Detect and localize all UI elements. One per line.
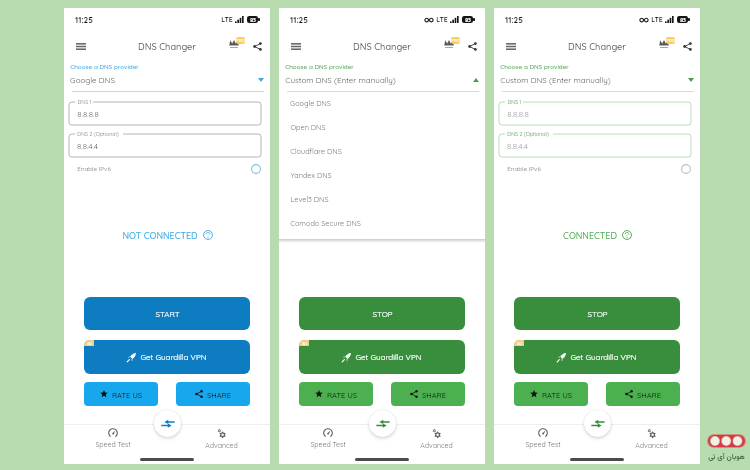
staticText: Get Guardilla VPN (355, 352, 422, 362)
staticText: Custom DNS (Enter manually) (285, 75, 396, 85)
button[interactable]: Get Guardilla VPN (514, 340, 680, 374)
staticText: DNS 1 (77, 99, 92, 106)
staticText: 8.8.4.4 (77, 141, 98, 151)
button[interactable]: Share (248, 37, 267, 56)
staticText: Cloudflare DNS (290, 147, 342, 156)
staticText: Choose a DNS provider (500, 63, 569, 71)
staticText: 83 (465, 17, 471, 23)
staticText: Get Guardilla VPN (140, 352, 207, 362)
staticText: 8.8.8.8 (507, 109, 529, 119)
staticText: DNS Changer (138, 41, 196, 52)
staticText: Enable IPv6 (77, 165, 111, 173)
button[interactable]: CONNECTED (494, 227, 700, 243)
staticText: Custom DNS (Enter manually) (500, 75, 611, 85)
staticText: NOT CONNECTED (122, 230, 198, 241)
staticText: 83 (680, 17, 686, 23)
staticText: CONNECTED (348, 230, 402, 241)
staticText: Level3 DNS (290, 195, 329, 204)
button[interactable]: Yandex DNS (290, 163, 485, 187)
button[interactable]: Speed Test (81, 428, 145, 449)
staticText: Yandex DNS (290, 171, 332, 180)
staticText: Open DNS (290, 123, 326, 132)
staticText: DNS 2 (Optional) (77, 131, 119, 138)
staticText: Speed Test (525, 440, 561, 449)
staticText: 11:25 (290, 15, 308, 25)
button[interactable]: Google DNS (290, 91, 485, 115)
staticText: RATE US (542, 390, 572, 399)
button[interactable]: Go Pro (439, 35, 460, 56)
staticText: 8.8.8.8 (77, 109, 99, 119)
button[interactable]: Advanced (404, 428, 468, 450)
button[interactable]: RATE US (84, 382, 158, 406)
button[interactable]: Menu (501, 37, 520, 56)
staticText: RATE US (327, 390, 357, 399)
button[interactable]: Cloudflare DNS (290, 139, 485, 163)
button[interactable]: Share (463, 37, 482, 56)
button[interactable]: SHARE (606, 382, 680, 406)
button[interactable]: Get Guardilla VPN (299, 340, 465, 374)
button[interactable]: NOT CONNECTED (64, 227, 270, 243)
staticText: 11:25 (75, 15, 93, 25)
staticText: SHARE (422, 390, 446, 399)
staticText: Speed Test (95, 440, 131, 449)
button[interactable]: Connect (154, 410, 181, 437)
staticText: 83 (250, 17, 256, 23)
button[interactable]: STOP (299, 297, 465, 330)
staticText: DNS 1 (507, 99, 522, 106)
button[interactable]: Advanced (189, 428, 253, 450)
staticText: Choose a DNS provider (285, 63, 354, 71)
staticText: LTE (436, 15, 448, 24)
button[interactable]: SHARE (176, 382, 250, 406)
staticText: DNS Changer (353, 41, 411, 52)
staticText: PRO (451, 38, 460, 43)
staticText: AD (302, 341, 307, 345)
button[interactable]: Go Pro (224, 35, 245, 56)
button[interactable]: START (84, 297, 250, 330)
button[interactable]: Custom DNS (Enter manually) (285, 74, 479, 86)
staticText: AD (517, 341, 522, 345)
button[interactable]: STOP (514, 297, 680, 330)
staticText: STOP (372, 309, 393, 319)
button[interactable]: Custom DNS (Enter manually) (500, 74, 694, 86)
button[interactable]: Enable IPv6 (77, 161, 261, 177)
staticText: Advanced (205, 441, 238, 450)
button[interactable]: Go Pro (654, 35, 675, 56)
staticText: DNS 2 (Optional) (507, 131, 549, 138)
button[interactable]: Advanced (619, 428, 683, 450)
button[interactable]: Enable IPv6 (507, 161, 691, 177)
staticText: Advanced (420, 441, 453, 450)
staticText: Advanced (635, 441, 668, 450)
staticText: START (155, 309, 180, 319)
button[interactable]: Speed Test (296, 428, 360, 449)
staticText: Choose a DNS provider (70, 63, 139, 71)
button[interactable]: CONNECTED (279, 227, 485, 243)
staticText: PRO (236, 38, 245, 43)
staticText: Google DNS (70, 75, 115, 85)
button[interactable]: Open DNS (290, 115, 485, 139)
staticText: 8.8.4.4 (507, 141, 528, 151)
button[interactable]: RATE US (514, 382, 588, 406)
staticText: RATE US (112, 390, 142, 399)
button[interactable]: Speed Test (511, 428, 575, 449)
button[interactable]: Menu (71, 37, 90, 56)
button[interactable]: Share (678, 37, 697, 56)
staticText: DNS Changer (568, 41, 626, 52)
button[interactable]: Connect (584, 410, 611, 437)
staticText: LTE (651, 15, 663, 24)
button[interactable]: SHARE (391, 382, 465, 406)
button[interactable]: Google DNS (70, 74, 264, 86)
button[interactable]: Level3 DNS (290, 187, 485, 211)
staticText: SHARE (637, 390, 661, 399)
staticText: STOP (587, 309, 608, 319)
staticText: AD (87, 341, 92, 345)
staticText: Speed Test (310, 440, 346, 449)
staticText: Enable IPv6 (507, 165, 541, 173)
button[interactable]: RATE US (299, 382, 373, 406)
staticText: Comodo Secure DNS (290, 219, 361, 228)
staticText: Get Guardilla VPN (570, 352, 637, 362)
button[interactable]: Menu (286, 37, 305, 56)
button[interactable]: Get Guardilla VPN (84, 340, 250, 374)
button[interactable]: Comodo Secure DNS (290, 211, 485, 235)
staticText: Google DNS (290, 99, 331, 108)
button[interactable]: Connect (369, 410, 396, 437)
